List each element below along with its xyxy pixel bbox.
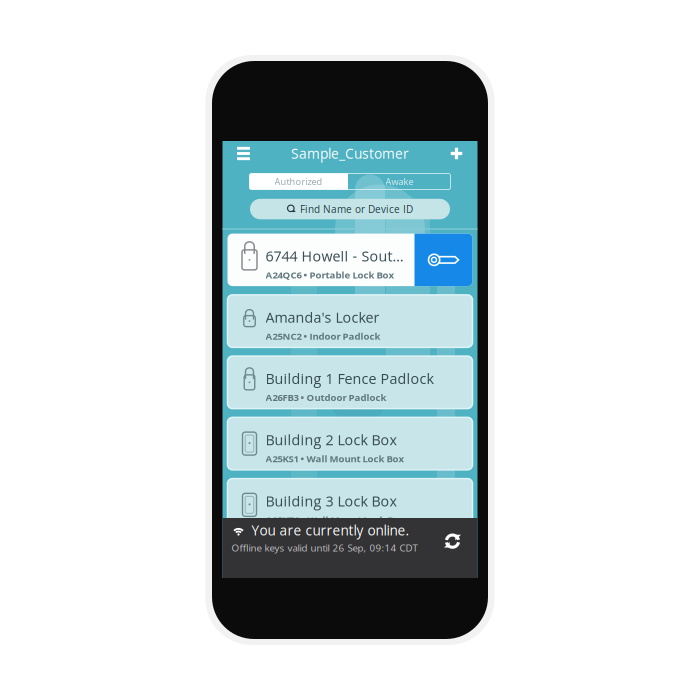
- staticText: A24QC6 • Portable Lock Box: [265, 268, 394, 281]
- staticText: You are currently online.: [251, 521, 409, 539]
- button[interactable]: Refresh: [439, 528, 465, 554]
- button[interactable]: Authorized: [249, 173, 348, 190]
- staticText: Building 3 Lock Box: [265, 491, 396, 511]
- button[interactable]: Menu: [222, 142, 264, 165]
- staticText: A26FB3 • Outdoor Padlock: [265, 391, 386, 404]
- staticText: Offline keys valid until 26 Sep, 09:14 C…: [231, 541, 417, 554]
- staticText: Authorized: [274, 175, 322, 188]
- button[interactable]: Amanda's Locker: [227, 295, 472, 347]
- button[interactable]: Awake: [348, 173, 451, 190]
- staticText: A25KT8 • Wall Mount Lock Box: [265, 513, 405, 526]
- staticText: Sample_Customer: [291, 144, 409, 163]
- staticText: Find Name or Device ID: [300, 202, 413, 216]
- staticText: Building 2 Lock Box: [265, 430, 396, 449]
- staticText: A25KS1 • Wall Mount Lock Box: [265, 452, 404, 465]
- button[interactable]: Building 2 Lock Box: [227, 417, 472, 470]
- staticText: Amanda's Locker: [265, 308, 379, 327]
- staticText: Building 1 Fence Padlock: [265, 369, 433, 388]
- staticText: Awake: [385, 175, 413, 188]
- button[interactable]: 6744 Howell - Sout…: [227, 234, 472, 286]
- button[interactable]: Add: [435, 142, 477, 165]
- button[interactable]: Building 1 Fence Padlock: [227, 356, 472, 409]
- button[interactable]: Building 3 Lock Box: [227, 479, 472, 531]
- staticText: 6744 Howell - Sout…: [265, 246, 403, 266]
- staticText: A25NC2 • Indoor Padlock: [265, 329, 380, 343]
